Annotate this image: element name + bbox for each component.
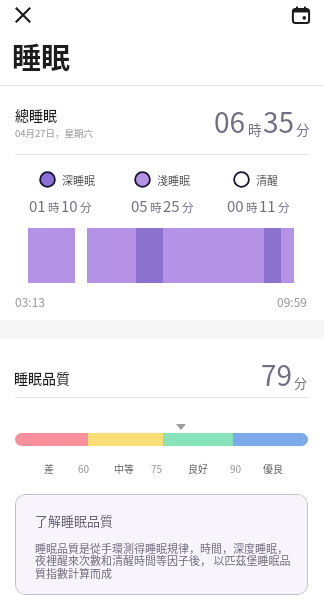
staticText: 90 [230,461,242,475]
staticText: 時 [246,199,258,216]
staticText: 05 [131,195,148,217]
staticText: 分 [182,199,194,216]
staticText: 時 [150,199,162,216]
staticText: 25 [163,195,180,217]
staticText: 35 [263,101,295,142]
staticText: 差 [44,461,54,475]
staticText: 11 [259,195,276,217]
staticText: 01 [29,195,46,217]
staticText: 分 [278,199,290,216]
staticText: 79 [261,354,293,395]
staticText: 淺睡眠 [157,172,190,188]
staticText: 時 [48,199,60,216]
staticText: 60 [78,461,90,475]
staticText: 06 [214,101,246,142]
staticText: 時 [248,119,262,139]
staticText: 09:59 [277,293,307,310]
button[interactable]: 了解睡眠品質 [15,494,308,595]
staticText: 總睡眠 [15,105,57,125]
staticText: 優良 [263,461,283,475]
staticText: 中等 [114,461,134,475]
staticText: 分 [296,119,310,139]
staticText: 睡眠品質是從手環測得睡眠規律，時間，深度睡眠，夜裡醒來次數和清醒時間等因子後， … [35,540,295,582]
staticText: 10 [61,195,78,217]
staticText: 了解睡眠品質 [35,511,114,530]
staticText: 睡眠品質 [14,368,70,388]
staticText: 深睡眠 [62,172,95,188]
staticText: 睡眠 [12,35,71,77]
staticText: 75 [151,461,163,475]
staticText: 良好 [188,461,208,475]
staticText: 清醒 [256,172,278,188]
staticText: 分 [294,373,308,392]
staticText: 03:13 [15,293,45,310]
button[interactable]: Calendar [287,1,315,29]
staticText: 00 [227,195,244,217]
button[interactable]: Close [9,1,37,29]
staticText: 分 [80,199,92,216]
staticText: 04月27日，星期六 [15,126,94,140]
